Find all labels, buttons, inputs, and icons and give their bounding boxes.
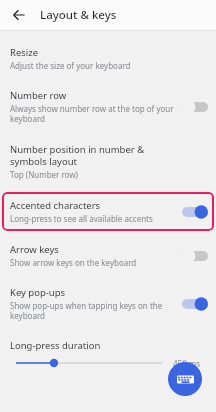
staticText: Top (Number row) (10, 169, 78, 180)
staticText: Long-press duration (10, 339, 101, 352)
staticText: Show arrow keys on the keyboard (10, 257, 137, 268)
button[interactable]: Long-press duration (0, 331, 216, 378)
staticText: Resize (10, 46, 39, 59)
button[interactable]: Number row (0, 80, 216, 134)
button[interactable]: Toggle off (182, 99, 208, 115)
staticText: Accented characters (10, 199, 101, 212)
button[interactable]: Toggle on (182, 296, 208, 312)
staticText: Key pop-ups (10, 286, 66, 299)
button[interactable]: Toggle on (182, 204, 208, 220)
button[interactable]: Number position in number & symbols layo… (0, 134, 216, 189)
button[interactable]: Open keyboard (168, 362, 202, 396)
button[interactable]: Accented characters (2, 192, 214, 231)
staticText: 450 ms (173, 358, 201, 369)
staticText: Number row (10, 89, 67, 102)
button[interactable]: Key pop-ups (0, 277, 216, 331)
button[interactable]: Arrow keys (0, 234, 216, 277)
staticText: Long-press to see all available accents (10, 213, 153, 224)
staticText: Layout & keys (40, 7, 117, 23)
button[interactable]: Toggle off (182, 248, 208, 264)
button[interactable]: Back (6, 2, 32, 28)
staticText: Show pop-ups when tapping keys on the ke… (10, 300, 176, 322)
staticText: Arrow keys (10, 243, 59, 256)
staticText: Adjust the size of your keyboard (10, 60, 131, 71)
staticText: Number position in number & symbols layo… (10, 143, 176, 168)
button[interactable]: Resize (0, 37, 216, 80)
staticText: Always show number row at the top of you… (10, 103, 176, 125)
